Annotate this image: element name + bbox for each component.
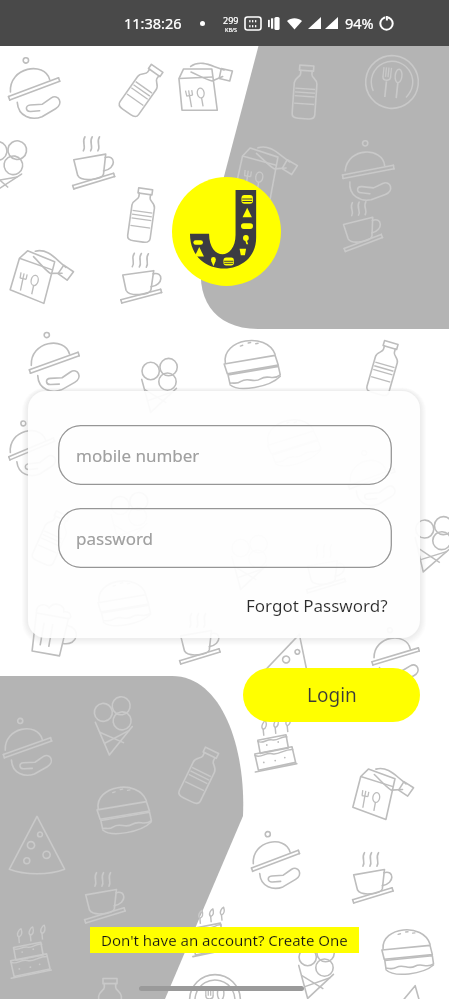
button[interactable]: mobile number (58, 425, 392, 485)
staticText: KB/S (225, 26, 238, 33)
staticText: Forgot Password? (246, 594, 388, 617)
button[interactable]: Login (243, 668, 420, 722)
button[interactable]: password (58, 508, 392, 568)
staticText: Login (307, 682, 357, 708)
button[interactable]: Don't have an account? Create One (90, 927, 359, 953)
button[interactable]: Forgot Password? (242, 590, 392, 621)
staticText: 94% (345, 13, 374, 33)
staticText: password (76, 527, 154, 550)
staticText: mobile number (76, 444, 200, 467)
staticText: Don't have an account? Create One (101, 930, 348, 950)
staticText: 299 (223, 14, 239, 26)
staticText: 11:38:26 (124, 13, 182, 33)
